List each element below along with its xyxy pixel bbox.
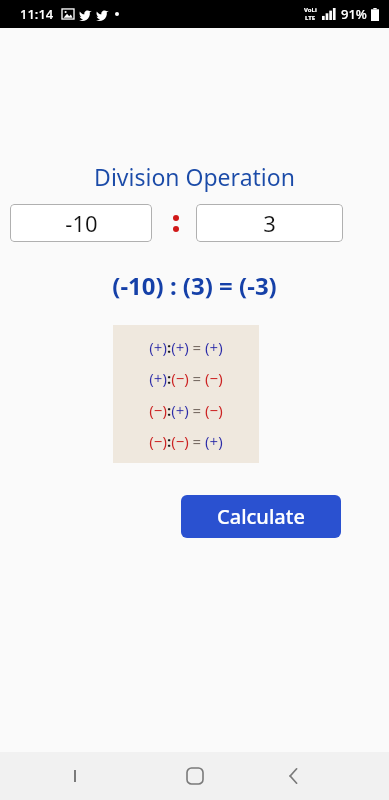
- staticText: Division Operation: [0, 161, 389, 192]
- button[interactable]: Home: [173, 752, 217, 800]
- staticText: 3: [263, 208, 276, 238]
- staticText: LTE: [305, 14, 316, 22]
- staticText: Calculate: [217, 503, 305, 530]
- staticText: 91%: [341, 5, 367, 23]
- staticText: (−):(+) = (−): [149, 400, 223, 420]
- staticText: (+):(+) = (+): [149, 337, 223, 357]
- staticText: -10: [65, 208, 98, 238]
- staticText: (-10) : (3) = (-3): [0, 269, 389, 302]
- button[interactable]: Calculate: [181, 495, 341, 538]
- button[interactable]: -10: [10, 204, 152, 242]
- button[interactable]: Back: [274, 752, 314, 800]
- staticText: 11:14: [20, 5, 54, 23]
- staticText: VoLi: [304, 6, 317, 14]
- staticText: (+):(−) = (−): [149, 368, 223, 388]
- button[interactable]: 3: [196, 204, 343, 242]
- staticText: (−):(−) = (+): [149, 431, 223, 451]
